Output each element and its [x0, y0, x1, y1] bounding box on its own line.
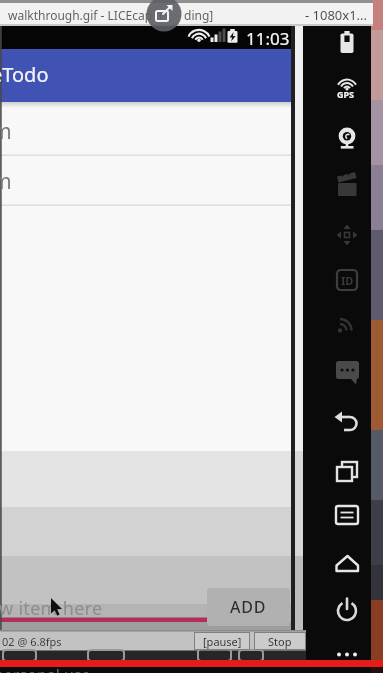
button[interactable] [331, 406, 363, 438]
button[interactable] [331, 594, 363, 626]
staticText: ID [341, 273, 354, 288]
button[interactable]: [pause] [194, 632, 250, 650]
button[interactable] [331, 264, 363, 296]
button[interactable]: w item here [0, 585, 207, 627]
button[interactable] [331, 499, 363, 531]
button[interactable]: Stop [254, 632, 306, 650]
button[interactable]: m [0, 107, 290, 155]
button[interactable] [331, 547, 363, 579]
button[interactable] [331, 456, 363, 488]
button[interactable] [331, 72, 363, 104]
button[interactable] [331, 357, 363, 389]
staticText: GPS [337, 88, 355, 100]
button[interactable] [331, 169, 363, 201]
staticText: m [0, 117, 12, 146]
button[interactable]: ADD [207, 588, 290, 626]
button[interactable]: m [0, 156, 290, 204]
staticText: ding] [184, 7, 214, 23]
staticText: personal use [0, 664, 91, 673]
staticText: - 1080x1... [305, 6, 368, 24]
staticText: eTodo [0, 61, 49, 88]
staticText: 02 @ 6.8fps [2, 634, 62, 649]
button[interactable] [331, 307, 363, 339]
button[interactable] [331, 26, 363, 58]
staticText: w item here [0, 596, 103, 621]
staticText: [pause] [203, 634, 242, 649]
button[interactable] [331, 219, 363, 251]
staticText: 11:03 [246, 27, 290, 50]
button[interactable] [331, 119, 363, 151]
staticText: ADD [230, 596, 267, 618]
staticText: m [0, 167, 12, 196]
staticText: walkthrough.gif - LICEcap [r [8, 7, 165, 23]
staticText: Stop [268, 634, 292, 649]
